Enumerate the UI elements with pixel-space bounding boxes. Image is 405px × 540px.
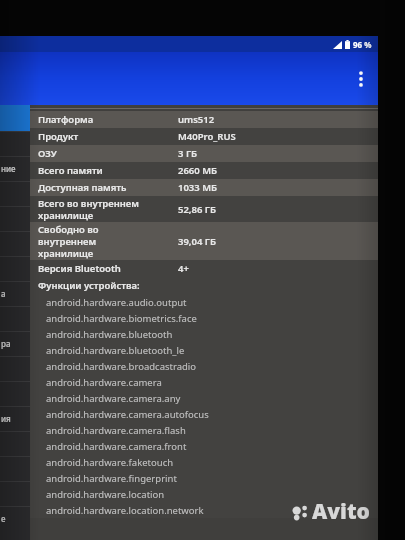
button[interactable]: е bbox=[0, 506, 30, 531]
staticText: Всего во внутреннем хранилище bbox=[38, 197, 166, 222]
button[interactable] bbox=[0, 431, 30, 456]
button[interactable]: Платформа bbox=[30, 111, 378, 128]
staticText: android.hardware.location bbox=[46, 488, 165, 501]
staticText: ние bbox=[1, 163, 16, 174]
button[interactable]: ние bbox=[0, 156, 30, 181]
button[interactable] bbox=[0, 356, 30, 381]
button[interactable] bbox=[0, 381, 30, 406]
button[interactable] bbox=[0, 231, 30, 256]
staticText: е bbox=[1, 513, 6, 524]
staticText: 1033 МБ bbox=[178, 181, 218, 194]
staticText: Версия Bluetooth bbox=[38, 262, 166, 275]
staticText: android.hardware.biometrics.face bbox=[46, 312, 197, 325]
button[interactable]: Доступная память bbox=[30, 179, 378, 196]
staticText: ия bbox=[1, 413, 11, 424]
staticText: android.hardware.bluetooth_le bbox=[46, 344, 185, 357]
staticText: Доступная память bbox=[38, 181, 166, 194]
staticText: 2660 МБ bbox=[178, 164, 218, 177]
staticText: 52,86 ГБ bbox=[178, 203, 217, 216]
button[interactable] bbox=[0, 256, 30, 281]
staticText: ра bbox=[1, 338, 11, 349]
button[interactable]: ОЗУ bbox=[30, 145, 378, 162]
staticText: ums512 bbox=[178, 113, 215, 126]
staticText: а bbox=[1, 288, 6, 299]
staticText: android.hardware.audio.output bbox=[46, 296, 187, 309]
staticText: ОЗУ bbox=[38, 147, 166, 160]
staticText: android.hardware.camera.front bbox=[46, 440, 187, 453]
staticText: 4+ bbox=[178, 262, 189, 275]
button[interactable] bbox=[0, 131, 30, 156]
staticText: android.hardware.fingerprint bbox=[46, 472, 177, 485]
button[interactable]: Продукт bbox=[30, 128, 378, 145]
button[interactable]: а bbox=[0, 281, 30, 306]
staticText: Свободно во внутреннем хранилище bbox=[38, 223, 166, 260]
staticText: android.hardware.camera.autofocus bbox=[46, 408, 209, 421]
button[interactable] bbox=[0, 105, 30, 131]
button[interactable]: ра bbox=[0, 331, 30, 356]
staticText: Продукт bbox=[38, 130, 166, 143]
staticText: Avito bbox=[312, 497, 370, 526]
button[interactable] bbox=[0, 306, 30, 331]
staticText: android.hardware.location.network bbox=[46, 504, 204, 517]
staticText: Платформа bbox=[38, 113, 166, 126]
staticText: android.hardware.camera.flash bbox=[46, 424, 186, 437]
staticText: Функции устройства: bbox=[38, 279, 140, 292]
staticText: android.hardware.camera.any bbox=[46, 392, 181, 405]
staticText: android.hardware.bluetooth bbox=[46, 328, 173, 341]
button[interactable]: More options bbox=[348, 66, 374, 92]
staticText: 96 % bbox=[353, 39, 372, 50]
staticText: 39,04 ГБ bbox=[178, 235, 217, 248]
staticText: android.hardware.faketouch bbox=[46, 456, 174, 469]
staticText: android.hardware.camera bbox=[46, 376, 162, 389]
button[interactable]: Свободно во внутреннем хранилище bbox=[30, 222, 378, 260]
button[interactable] bbox=[0, 456, 30, 481]
button[interactable]: Всего памяти bbox=[30, 162, 378, 179]
button[interactable]: Версия Bluetooth bbox=[30, 260, 378, 277]
button[interactable]: ия bbox=[0, 406, 30, 431]
button[interactable]: Всего во внутреннем хранилище bbox=[30, 196, 378, 222]
staticText: android.hardware.broadcastradio bbox=[46, 360, 197, 373]
staticText: M40Pro_RUS bbox=[178, 130, 236, 143]
button[interactable] bbox=[0, 206, 30, 231]
staticText: Всего памяти bbox=[38, 164, 166, 177]
staticText: 3 ГБ bbox=[178, 147, 198, 160]
button[interactable] bbox=[0, 481, 30, 506]
button[interactable] bbox=[0, 181, 30, 206]
